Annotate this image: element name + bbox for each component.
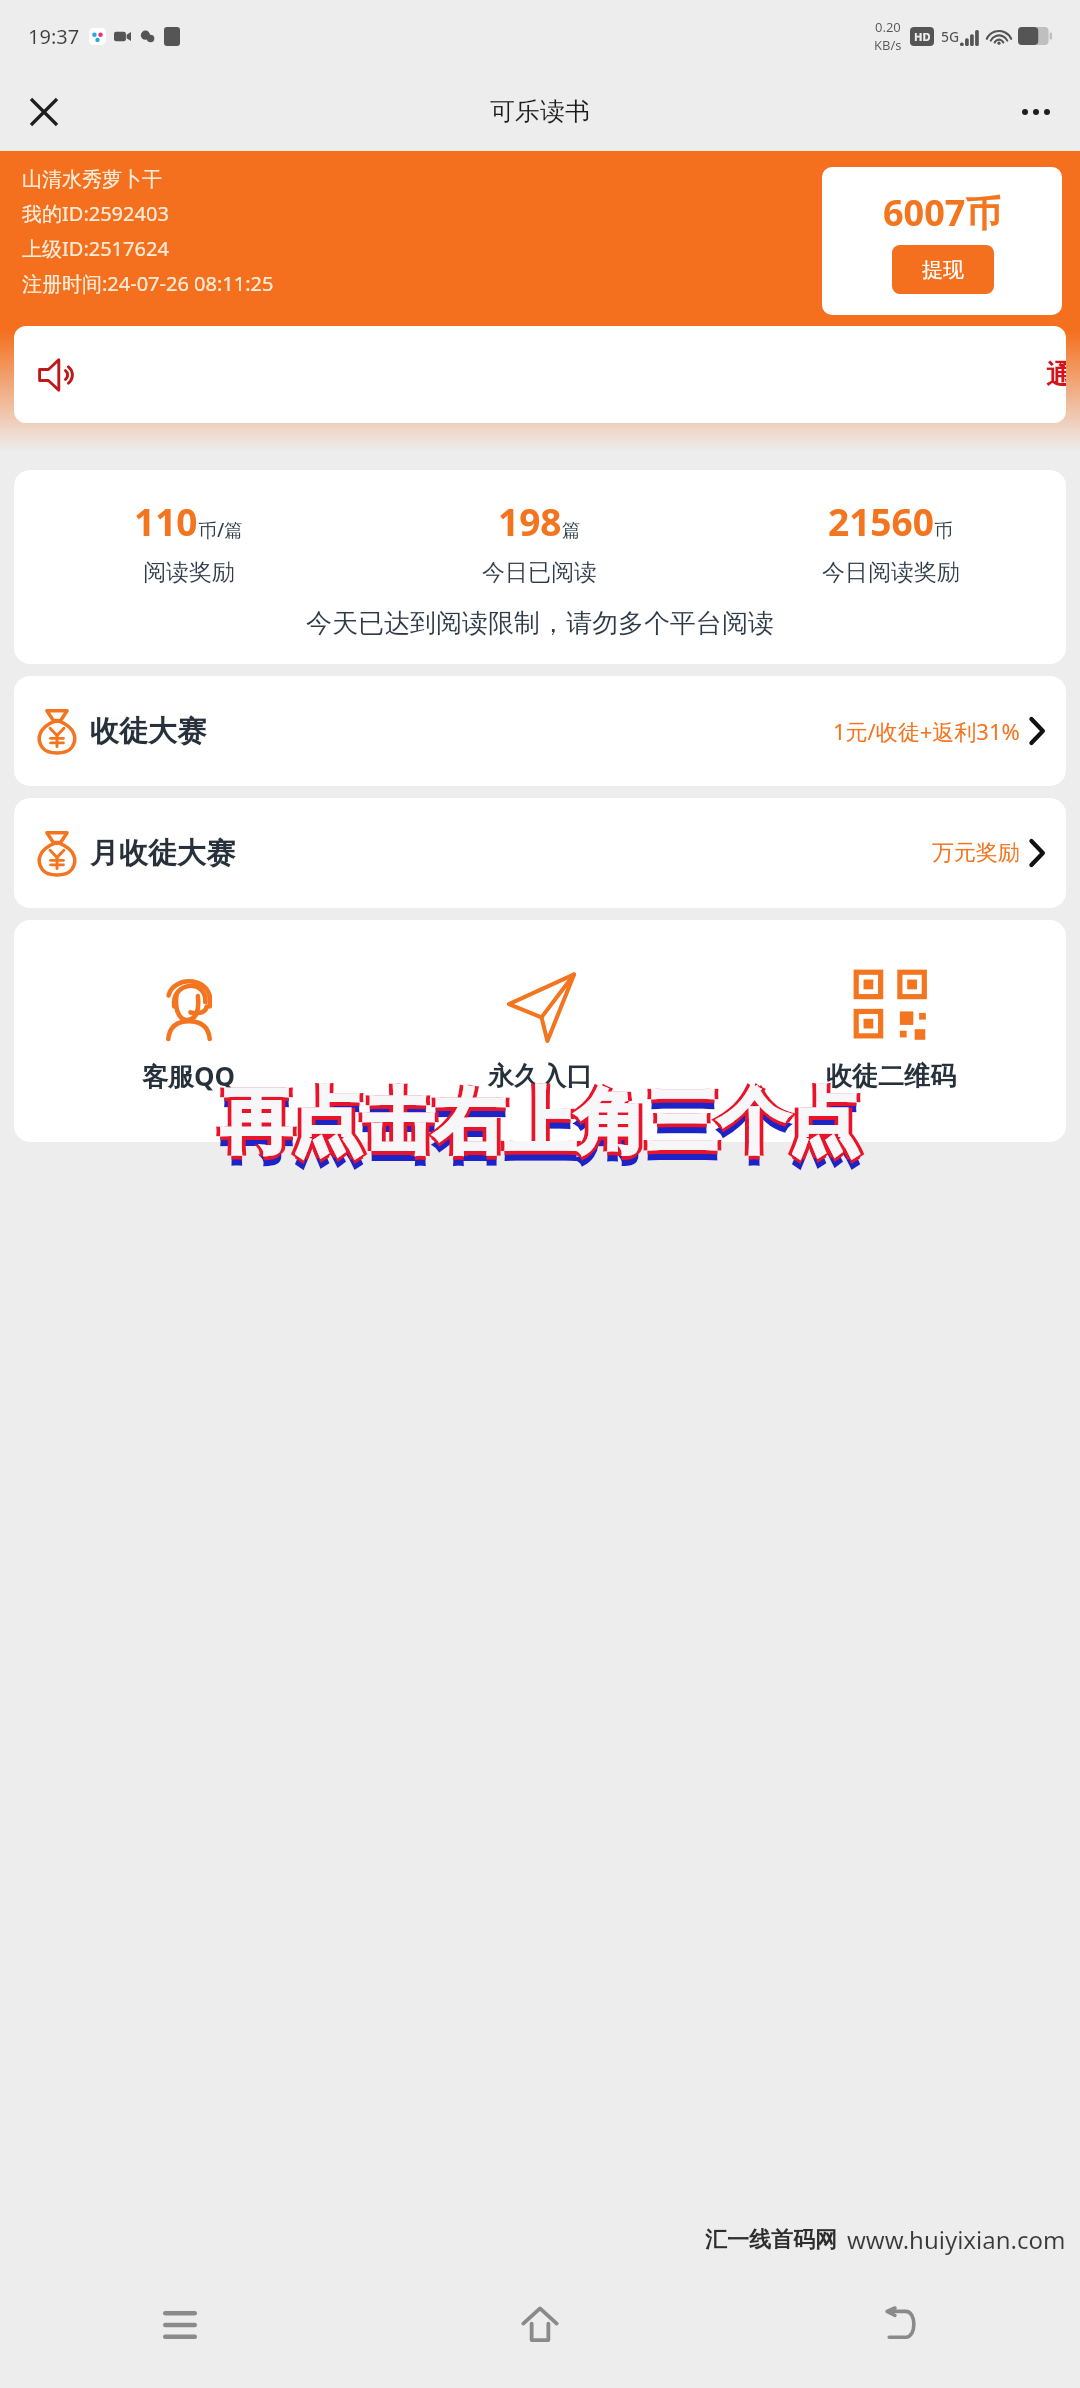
button[interactable]: 通知 xyxy=(14,326,1066,423)
staticText: 可乐读书 xyxy=(490,96,590,127)
staticText: 币 xyxy=(934,519,953,543)
button[interactable]: 月收徒大赛 xyxy=(14,798,1066,908)
staticText: 我的ID:2592403 xyxy=(22,200,169,227)
staticText: 币/篇 xyxy=(198,517,244,543)
staticText: 通知 xyxy=(1046,358,1066,392)
staticText: 月收徒大赛 xyxy=(90,835,235,872)
staticText: HD xyxy=(914,29,931,44)
staticText: 山清水秀萝卜干 xyxy=(22,167,162,192)
button[interactable]: More options xyxy=(1008,84,1064,140)
button[interactable]: Back xyxy=(720,2262,1080,2388)
staticText: 再点击右上角三个点 xyxy=(0,1078,1076,1167)
staticText: 再点击右上角三个点 xyxy=(0,1088,1080,1177)
button[interactable]: Recent apps xyxy=(0,2262,360,2388)
staticText: 客服QQ xyxy=(142,1058,236,1094)
staticText: 再点击右上角三个点 xyxy=(4,1078,1080,1167)
staticText: 198 xyxy=(498,496,562,546)
staticText: 6007币 xyxy=(883,188,1002,237)
staticText: 收徒大赛 xyxy=(90,713,206,750)
button[interactable]: 收徒二维码 xyxy=(715,920,1066,1142)
staticText: 提现 xyxy=(922,257,964,283)
staticText: 5G xyxy=(941,27,960,46)
staticText: 收徒二维码 xyxy=(826,1060,956,1093)
staticText: 阅读奖励 xyxy=(143,558,235,587)
button[interactable]: Home xyxy=(360,2262,720,2388)
staticText: 篇 xyxy=(562,519,581,543)
staticText: 21560 xyxy=(828,496,934,546)
staticText: 上级ID:2517624 xyxy=(22,235,169,262)
staticText: 万元奖励 xyxy=(932,839,1020,867)
button[interactable]: 客服QQ xyxy=(14,920,364,1142)
staticText: 汇一线首码网 xyxy=(705,2226,837,2254)
button[interactable]: 永久入口 xyxy=(364,920,715,1142)
staticText: 110 xyxy=(134,496,198,546)
staticText: 再点击右上角三个点 xyxy=(0,1082,1080,1171)
staticText: 再点击右上角三个点 xyxy=(0,1078,1080,1167)
staticText: 19:37 xyxy=(28,23,80,50)
staticText: www.huiyixian.com xyxy=(847,2223,1066,2256)
staticText: KB/s xyxy=(874,36,902,54)
staticText: 0.20 xyxy=(875,18,901,36)
button[interactable]: 提现 xyxy=(892,245,994,294)
button[interactable]: Close xyxy=(16,84,72,140)
staticText: 永久入口 xyxy=(488,1060,592,1093)
staticText: 注册时间:24-07-26 08:11:25 xyxy=(22,270,274,297)
staticText: 今日已阅读 xyxy=(482,558,597,587)
staticText: 今日阅读奖励 xyxy=(822,558,960,587)
staticText: 1元/收徒+返利31% xyxy=(833,716,1020,746)
staticText: 今天已达到阅读限制，请勿多个平台阅读 xyxy=(14,607,1066,640)
button[interactable]: 收徒大赛 xyxy=(14,676,1066,786)
